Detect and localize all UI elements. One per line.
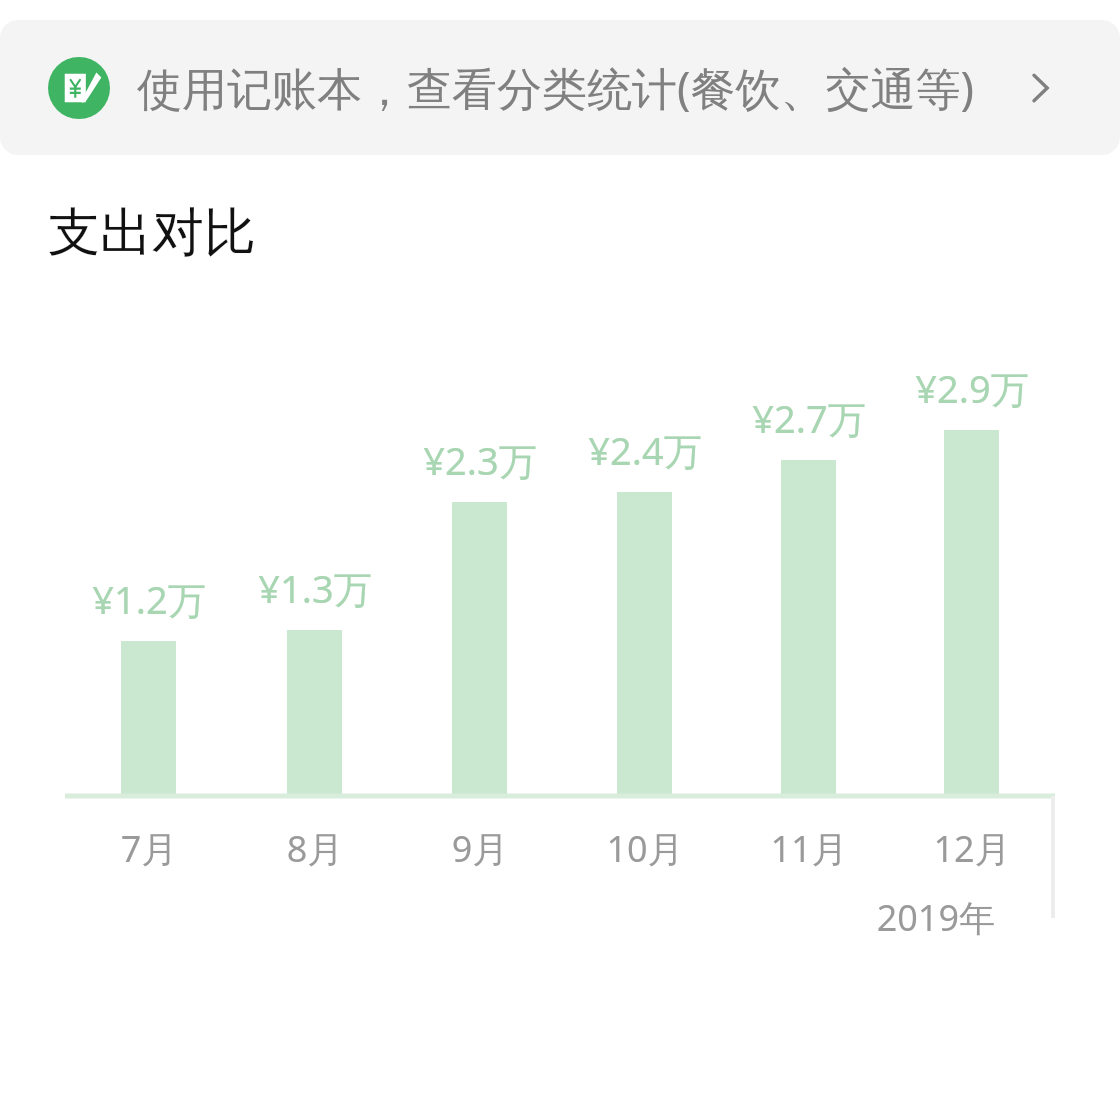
staticText: 2019年 xyxy=(855,893,995,942)
button[interactable]: 使用记账本，查看分类统计(餐饮、交通等) xyxy=(0,20,1120,155)
staticText: 10月 xyxy=(550,824,740,873)
button[interactable]: 打开记账本 xyxy=(1005,53,1075,123)
staticText: ¥2.9万 xyxy=(877,362,1067,414)
staticText: 9月 xyxy=(385,824,575,873)
staticText: 7月 xyxy=(54,824,244,873)
staticText: ¥2.7万 xyxy=(714,392,904,444)
staticText: 12月 xyxy=(877,824,1067,873)
staticText: 11月 xyxy=(714,824,904,873)
staticText: ¥1.3万 xyxy=(220,562,410,614)
staticText: ¥1.2万 xyxy=(54,573,244,625)
staticText: 使用记账本，查看分类统计(餐饮、交通等) xyxy=(137,57,975,118)
staticText: ¥2.3万 xyxy=(385,434,575,486)
staticText: 支出对比 xyxy=(48,200,256,266)
staticText: 8月 xyxy=(220,824,410,873)
staticText: ¥2.4万 xyxy=(550,424,740,476)
